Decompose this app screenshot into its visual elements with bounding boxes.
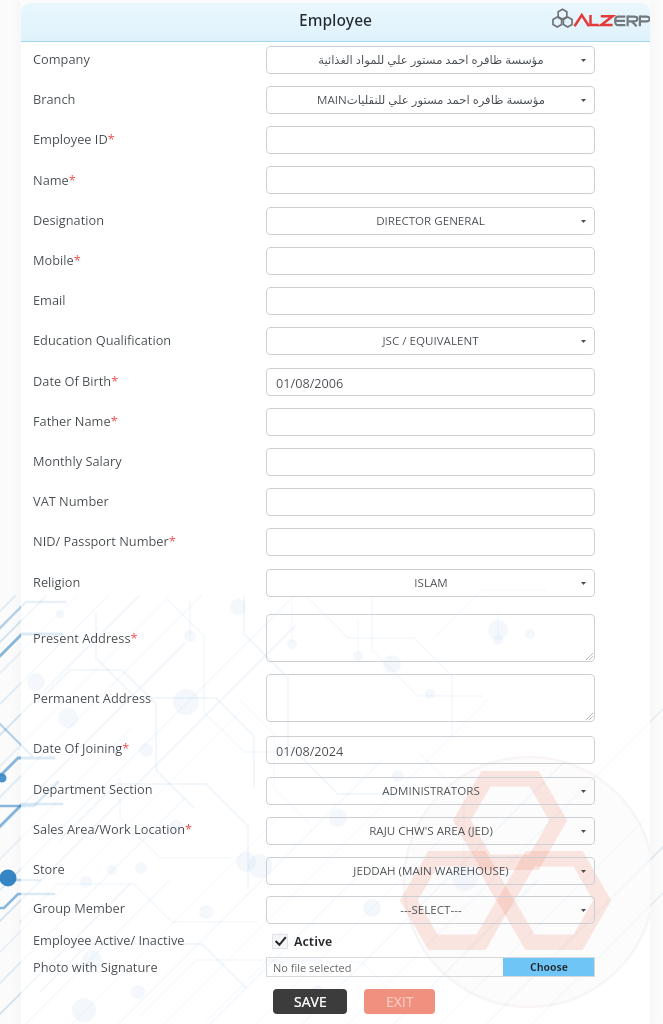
staticText: Company — [33, 50, 90, 67]
staticText: Sales Area/Work Location* — [33, 820, 193, 837]
staticText: No file selected — [273, 960, 352, 975]
button[interactable]: ADMINISTRATORS — [266, 777, 595, 805]
staticText: Name* — [33, 171, 76, 188]
button[interactable] — [266, 126, 595, 154]
button[interactable] — [266, 448, 595, 476]
staticText: 01/08/2006 — [276, 374, 344, 391]
staticText: Present Address* — [33, 629, 138, 646]
staticText: Department Section — [33, 780, 153, 797]
staticText: Date Of Birth* — [33, 372, 119, 389]
staticText: 01/08/2024 — [276, 742, 344, 759]
staticText: Religion — [33, 573, 81, 590]
staticText: Designation — [33, 211, 105, 228]
staticText: Date Of Joining* — [33, 739, 130, 756]
staticText: Group Member — [33, 899, 126, 916]
button[interactable]: مؤسسة ظافره احمد مستور علي للمواد الغذائ… — [266, 46, 595, 74]
button[interactable] — [266, 614, 595, 662]
staticText: Employee Active/ Inactive — [33, 931, 185, 948]
button[interactable] — [266, 287, 595, 315]
button[interactable]: MAINمؤسسة ظافره احمد مستور علي للنقليات — [266, 86, 595, 114]
button[interactable]: No file selected — [266, 957, 595, 977]
button[interactable]: DIRECTOR GENERAL — [266, 207, 595, 235]
staticText: Employee — [299, 9, 373, 30]
staticText: SAVE — [294, 992, 327, 1011]
button[interactable] — [266, 166, 595, 194]
button[interactable]: ISLAM — [266, 569, 595, 597]
staticText: EXIT — [386, 992, 414, 1011]
staticText: JEDDAH (MAIN WAREHOUSE) — [353, 863, 509, 879]
button[interactable]: ---SELECT--- — [266, 896, 595, 924]
staticText: JSC / EQUIVALENT — [382, 333, 479, 349]
staticText: Permanent Address — [33, 689, 152, 706]
staticText: Father Name* — [33, 412, 118, 429]
button[interactable] — [266, 247, 595, 275]
button[interactable]: Active — [272, 933, 339, 950]
staticText: Photo with Signature — [33, 958, 158, 975]
other: ALZERP logo — [553, 7, 650, 37]
button[interactable]: SAVE — [273, 989, 347, 1014]
staticText: Email — [33, 291, 66, 308]
staticText: RAJU CHW'S AREA (JED) — [369, 823, 493, 839]
staticText: ISLAM — [414, 575, 448, 591]
button[interactable] — [266, 674, 595, 722]
staticText: DIRECTOR GENERAL — [376, 213, 485, 229]
staticText: Education Qualification — [33, 331, 172, 348]
staticText: Mobile* — [33, 251, 81, 268]
button[interactable]: JSC / EQUIVALENT — [266, 327, 595, 355]
staticText: Employee ID* — [33, 130, 115, 147]
button[interactable]: EXIT — [364, 989, 435, 1014]
button[interactable]: RAJU CHW'S AREA (JED) — [266, 817, 595, 845]
staticText: ADMINISTRATORS — [382, 783, 480, 799]
button[interactable]: 01/08/2006 — [266, 368, 595, 396]
button[interactable]: 01/08/2024 — [266, 736, 595, 764]
staticText: NID/ Passport Number* — [33, 532, 176, 549]
button[interactable] — [266, 408, 595, 436]
staticText: Store — [33, 860, 65, 877]
staticText: VAT Number — [33, 492, 109, 509]
button[interactable]: JEDDAH (MAIN WAREHOUSE) — [266, 857, 595, 885]
staticText: ---SELECT--- — [400, 902, 462, 918]
staticText: Active — [294, 933, 333, 950]
staticText: مؤسسة ظافره احمد مستور علي للمواد الغذائ… — [318, 52, 544, 68]
button[interactable] — [266, 528, 595, 556]
staticText: Choose — [530, 960, 569, 974]
staticText: Monthly Salary — [33, 452, 122, 469]
staticText: MAINمؤسسة ظافره احمد مستور علي للنقليات — [317, 92, 545, 108]
staticText: Branch — [33, 90, 76, 107]
button[interactable] — [266, 488, 595, 516]
